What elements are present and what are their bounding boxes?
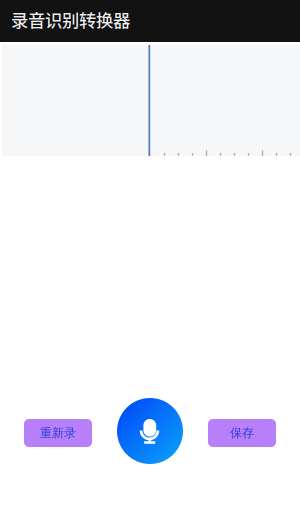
staticText: 录音识别转换器 (11, 7, 130, 32)
button[interactable]: Record (117, 398, 183, 464)
button[interactable]: 保存 (208, 419, 276, 447)
staticText: 保存 (230, 426, 254, 440)
button[interactable]: 重新录 (24, 419, 92, 447)
staticText: 重新录 (40, 426, 76, 440)
